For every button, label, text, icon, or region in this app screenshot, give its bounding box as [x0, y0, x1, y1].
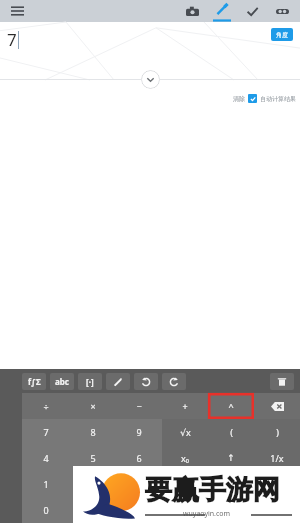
- button[interactable]: x₀: [162, 445, 208, 471]
- staticText: ÷: [43, 400, 49, 412]
- button[interactable]: Functions: [22, 373, 46, 390]
- staticText: 1: [43, 478, 49, 490]
- staticText: 要赢手游网: [145, 473, 280, 507]
- button[interactable]: ↑: [208, 445, 254, 471]
- button[interactable]: Delete all: [270, 373, 294, 390]
- staticText: [·]: [86, 376, 94, 387]
- button[interactable]: 1: [22, 471, 69, 497]
- staticText: (: [230, 426, 233, 438]
- button[interactable]: ): [254, 419, 300, 445]
- button[interactable]: Draw: [210, 0, 234, 22]
- staticText: +: [182, 400, 188, 412]
- button[interactable]: Key: [254, 497, 300, 523]
- staticText: 清除: [233, 95, 245, 103]
- button[interactable]: ×: [69, 393, 116, 419]
- button[interactable]: Key: [208, 471, 254, 497]
- button[interactable]: Key: [208, 497, 254, 523]
- button[interactable]: 8: [69, 419, 116, 445]
- button[interactable]: Glasses: [270, 0, 294, 22]
- button[interactable]: √x: [162, 419, 208, 445]
- button[interactable]: Confirm: [240, 0, 264, 22]
- staticText: ): [276, 426, 279, 438]
- button[interactable]: Menu: [6, 0, 28, 22]
- button[interactable]: −: [116, 393, 162, 419]
- staticText: 角度: [276, 31, 288, 39]
- button[interactable]: Matrix: [78, 373, 102, 390]
- button[interactable]: Key: [162, 471, 208, 497]
- staticText: wuyaoyin.com: [183, 509, 231, 519]
- button[interactable]: Undo: [134, 373, 158, 390]
- button[interactable]: 5: [69, 445, 116, 471]
- staticText: 5: [90, 452, 96, 464]
- button[interactable]: Key: [162, 497, 208, 523]
- staticText: −: [136, 400, 142, 412]
- button[interactable]: .: [69, 497, 116, 523]
- staticText: 7: [43, 426, 49, 438]
- button[interactable]: +: [162, 393, 208, 419]
- staticText: 0: [43, 504, 49, 516]
- staticText: ^: [228, 400, 234, 412]
- staticText: x₀: [181, 452, 189, 464]
- button[interactable]: 1/x: [254, 445, 300, 471]
- button[interactable]: 3: [116, 471, 162, 497]
- staticText: 1/x: [270, 452, 284, 464]
- button[interactable]: Key: [254, 471, 300, 497]
- staticText: ↑: [227, 453, 235, 463]
- staticText: 自动计算结果: [260, 95, 296, 103]
- button[interactable]: (: [208, 419, 254, 445]
- button[interactable]: ^: [208, 393, 254, 419]
- button[interactable]: Clean: [106, 373, 130, 390]
- button[interactable]: Key: [116, 497, 162, 523]
- staticText: abc: [55, 376, 69, 387]
- staticText: .: [91, 504, 94, 516]
- button[interactable]: 4: [22, 445, 69, 471]
- staticText: f∫Σ: [28, 376, 41, 387]
- staticText: 3: [136, 478, 142, 490]
- staticText: 8: [90, 426, 96, 438]
- button[interactable]: ÷: [22, 393, 69, 419]
- button[interactable]: 7: [22, 419, 69, 445]
- staticText: 9: [136, 426, 142, 438]
- staticText: ×: [90, 400, 96, 412]
- button[interactable]: 6: [116, 445, 162, 471]
- button[interactable]: Toggle: [248, 94, 257, 103]
- button[interactable]: 2: [69, 471, 116, 497]
- button[interactable]: 9: [116, 419, 162, 445]
- staticText: 6: [136, 452, 142, 464]
- button[interactable]: Collapse: [141, 70, 160, 89]
- button[interactable]: 角度: [271, 28, 293, 41]
- button[interactable]: Key: [254, 393, 300, 419]
- staticText: 2: [90, 478, 96, 490]
- staticText: 7: [7, 28, 17, 51]
- button[interactable]: Redo: [162, 373, 186, 390]
- staticText: √x: [180, 426, 191, 438]
- button[interactable]: Alphabet: [50, 373, 74, 390]
- button[interactable]: Camera: [180, 0, 204, 22]
- button[interactable]: 0: [22, 497, 69, 523]
- staticText: 4: [43, 452, 49, 464]
